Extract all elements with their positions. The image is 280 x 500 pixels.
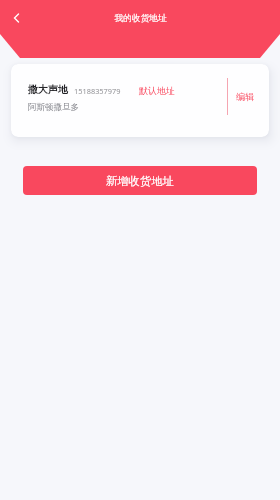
button[interactable]: 撒大声地 — [11, 64, 269, 137]
staticText: 新增收货地址 — [106, 174, 174, 188]
staticText: 编辑 — [236, 91, 254, 102]
staticText: 15188357979 — [74, 86, 121, 96]
staticText: 我的收货地址 — [114, 13, 167, 24]
button[interactable]: Back — [5, 6, 28, 29]
staticText: 撒大声地 — [28, 83, 68, 96]
button[interactable]: 新增收货地址 — [23, 166, 257, 195]
button[interactable]: 编辑 — [228, 64, 269, 137]
staticText: 阿斯顿撒旦多 — [28, 102, 79, 113]
staticText: 默认地址 — [139, 85, 175, 96]
